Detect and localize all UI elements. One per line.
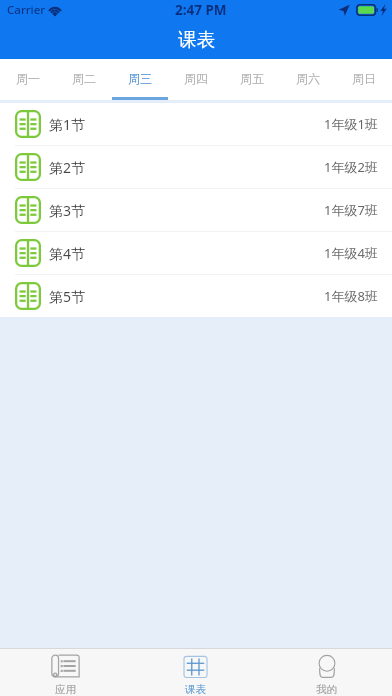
button[interactable]: 周四 xyxy=(168,59,224,100)
staticText: 应用 xyxy=(55,683,76,696)
button[interactable]: Apps xyxy=(0,649,130,696)
staticText: 周二 xyxy=(72,71,96,86)
button[interactable]: 第2节 xyxy=(0,146,392,188)
staticText: 第5节 xyxy=(49,287,86,306)
button[interactable]: 周日 xyxy=(336,59,392,100)
staticText: 1年级7班 xyxy=(324,201,378,219)
staticText: 2:47 PM xyxy=(175,1,227,19)
button[interactable]: 第4节 xyxy=(0,232,392,274)
button[interactable]: 第1节 xyxy=(0,103,392,145)
staticText: 我的 xyxy=(316,683,337,696)
staticText: 周一 xyxy=(16,71,40,86)
staticText: 周三 xyxy=(128,71,152,86)
staticText: 课表 xyxy=(178,28,215,51)
button[interactable]: 周二 xyxy=(56,59,112,100)
staticText: 1年级2班 xyxy=(324,158,378,176)
staticText: 课表 xyxy=(185,683,206,696)
button[interactable]: 第5节 xyxy=(0,275,392,317)
staticText: 1年级8班 xyxy=(324,287,378,305)
staticText: 第2节 xyxy=(49,158,86,177)
staticText: 1年级4班 xyxy=(324,244,378,262)
staticText: Carrier xyxy=(7,2,46,18)
button[interactable]: 周三 xyxy=(112,59,168,100)
staticText: 第4节 xyxy=(49,244,86,263)
button[interactable]: 第3节 xyxy=(0,189,392,231)
button[interactable]: Schedule xyxy=(130,649,261,696)
staticText: 周日 xyxy=(352,71,376,86)
staticText: 周四 xyxy=(184,71,208,86)
staticText: 周五 xyxy=(240,71,264,86)
staticText: 周六 xyxy=(296,71,320,86)
button[interactable]: Profile xyxy=(261,649,392,696)
staticText: 1年级1班 xyxy=(324,115,378,133)
staticText: 第1节 xyxy=(49,115,86,134)
button[interactable]: 周五 xyxy=(224,59,280,100)
staticText: 第3节 xyxy=(49,201,86,220)
button[interactable]: 周一 xyxy=(0,59,56,100)
button[interactable]: 周六 xyxy=(280,59,336,100)
